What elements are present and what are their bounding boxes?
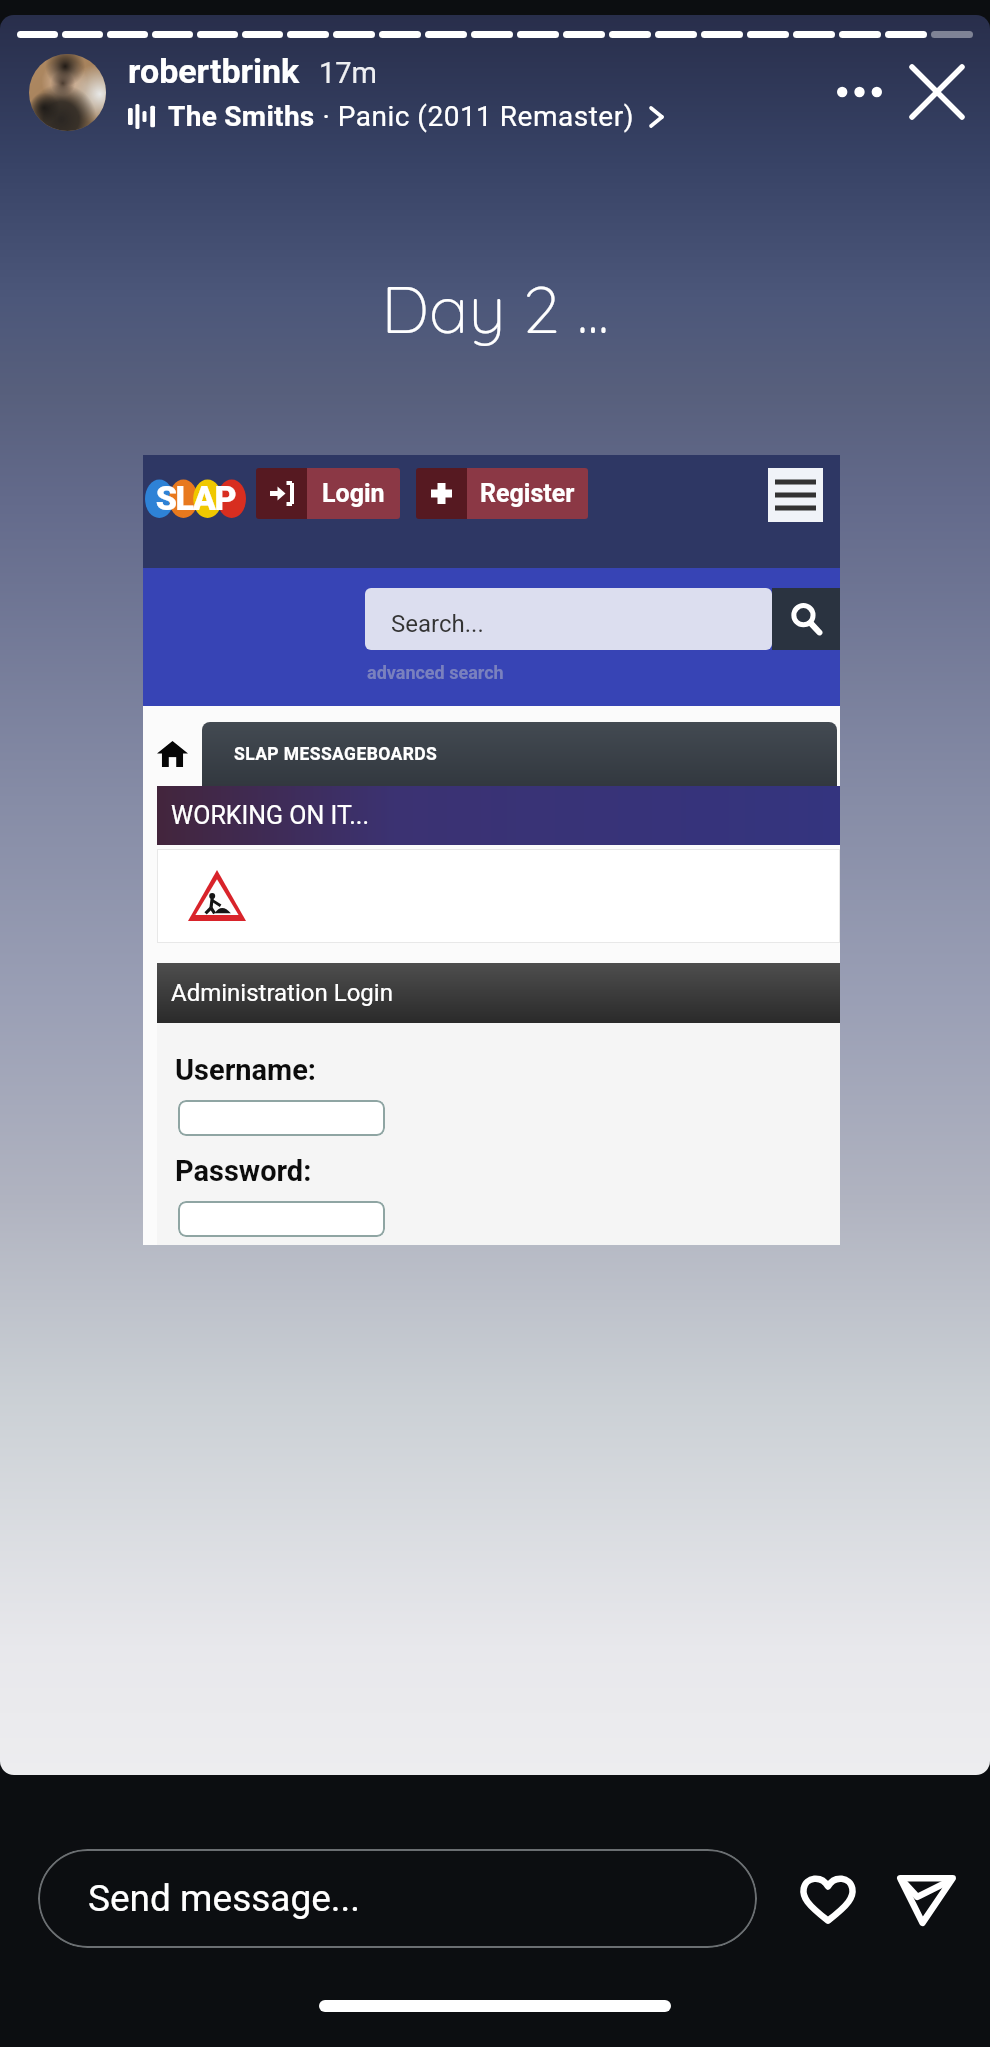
staticText: advanced search xyxy=(367,662,504,683)
button[interactable]: Close xyxy=(900,55,974,129)
staticText: Register xyxy=(480,479,575,508)
staticText: Send message... xyxy=(88,1877,361,1920)
staticText: Username: xyxy=(175,1053,317,1087)
staticText: 17m xyxy=(319,56,378,90)
staticText: SLAP MESSAGEBOARDS xyxy=(234,744,438,765)
button[interactable]: Share xyxy=(888,1861,964,1937)
staticText: Search... xyxy=(391,610,484,638)
staticText: · Panic (2011 Remaster) xyxy=(315,100,649,133)
staticText: WORKING ON IT... xyxy=(171,801,370,830)
button[interactable]: Like xyxy=(790,1861,866,1937)
button[interactable]: Login xyxy=(256,468,400,519)
staticText: Day 2 ... xyxy=(0,267,990,350)
button[interactable]: Register xyxy=(416,468,588,519)
staticText: The Smiths xyxy=(168,100,315,133)
staticText: SLAP xyxy=(145,478,246,518)
staticText: Password: xyxy=(175,1154,312,1188)
staticText: robertbrink xyxy=(128,51,300,91)
button[interactable]: Profile photo xyxy=(29,54,106,131)
staticText: Login xyxy=(322,479,385,508)
button[interactable]: Send message... xyxy=(38,1849,757,1948)
button[interactable]: More options xyxy=(822,55,896,129)
staticText: Administration Login xyxy=(171,979,393,1007)
